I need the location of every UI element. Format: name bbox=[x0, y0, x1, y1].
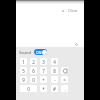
button[interactable]: * bbox=[40, 85, 47, 92]
staticText: # bbox=[53, 86, 56, 92]
button[interactable]: 0 bbox=[20, 85, 37, 92]
staticText: 2 bbox=[32, 59, 35, 65]
button[interactable]: 0 bbox=[30, 76, 37, 83]
staticText: Sound bbox=[19, 50, 32, 55]
button[interactable]: 1 bbox=[20, 58, 27, 65]
staticText: 0 bbox=[32, 77, 35, 83]
button[interactable]: - bbox=[51, 76, 58, 83]
staticText: 3 bbox=[42, 59, 45, 65]
staticText: . bbox=[64, 86, 66, 92]
staticText: - bbox=[54, 77, 56, 83]
button[interactable]: 6 bbox=[30, 67, 37, 74]
button[interactable]: 8 bbox=[51, 67, 58, 74]
staticText: 1 bbox=[22, 59, 25, 65]
staticText: + bbox=[42, 77, 45, 83]
staticText: ON bbox=[36, 50, 42, 55]
button[interactable]: = bbox=[61, 76, 68, 83]
staticText: Clear bbox=[68, 8, 78, 13]
staticText: 8 bbox=[53, 68, 56, 74]
button[interactable]: 4 bbox=[51, 58, 58, 65]
staticText: = bbox=[63, 77, 66, 83]
button[interactable]: . bbox=[61, 85, 68, 92]
staticText: 9 bbox=[22, 77, 25, 83]
button[interactable]: Clear bbox=[61, 8, 78, 13]
button[interactable]: 2 bbox=[30, 58, 37, 65]
staticText: * bbox=[42, 86, 45, 92]
staticText: 5 bbox=[22, 68, 25, 74]
button[interactable]: Info bbox=[75, 43, 78, 46]
button[interactable]: ON bbox=[34, 49, 47, 55]
button[interactable]: 5 bbox=[20, 67, 27, 74]
staticText: 0 bbox=[27, 86, 30, 92]
button[interactable]: 9 bbox=[20, 76, 27, 83]
button[interactable]: # bbox=[51, 85, 58, 92]
staticText: 7 bbox=[42, 68, 45, 74]
button[interactable]: 7 bbox=[40, 67, 47, 74]
button[interactable]: + bbox=[40, 76, 47, 83]
staticText: 4 bbox=[53, 59, 56, 65]
staticText: 6 bbox=[32, 68, 35, 74]
button[interactable]: Backspace bbox=[61, 67, 68, 74]
button[interactable]: 3 bbox=[40, 58, 47, 65]
